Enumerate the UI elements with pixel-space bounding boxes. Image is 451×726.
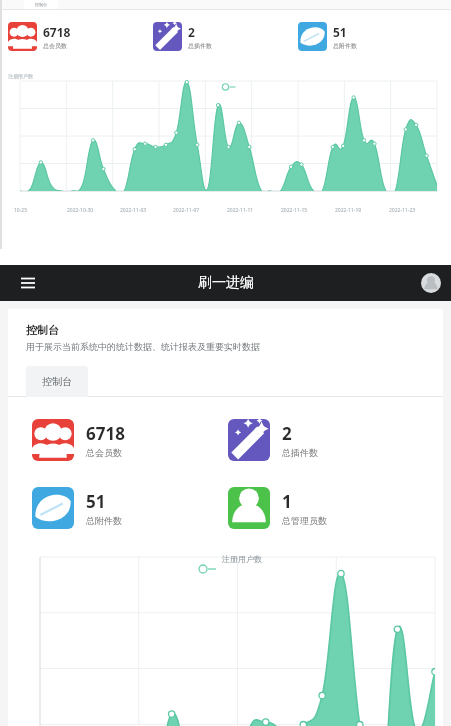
button[interactable]: 总插件数 [153, 22, 298, 51]
staticText: 总会员数 [43, 42, 67, 50]
staticText: 总附件数 [86, 515, 122, 526]
staticText: 6718 [43, 24, 71, 40]
staticText: 控制台 [26, 323, 59, 337]
staticText: 总附件数 [333, 42, 357, 50]
staticText: 2022-11-11 [227, 207, 281, 214]
staticText: 用于展示当前系统中的统计数据、统计报表及重要实时数据 [26, 341, 260, 352]
staticText: 2022-11-03 [120, 207, 173, 214]
staticText: 总插件数 [282, 447, 318, 458]
staticText: 控制台 [42, 375, 72, 388]
staticText: 总会员数 [86, 447, 122, 458]
button[interactable]: 总插件数 [228, 419, 425, 461]
staticText: 2022-11-19 [335, 207, 389, 214]
staticText: 2 [282, 422, 292, 445]
staticText: 注册用户数 [8, 73, 33, 79]
staticText: 2 [188, 24, 195, 40]
other: 总管理员数 [228, 487, 270, 529]
staticText: 刷一进编 [198, 274, 254, 292]
other: 总插件数 [228, 419, 270, 461]
staticText: 2022-11-15 [281, 207, 335, 214]
staticText: 1 [282, 490, 292, 513]
other: 总会员数 [32, 419, 74, 461]
other: 总附件数 [32, 487, 74, 529]
staticText: 51 [333, 24, 347, 40]
button[interactable]: 总附件数 [298, 22, 443, 51]
button[interactable]: 总附件数 [32, 487, 228, 529]
staticText: 2022-11-23 [389, 207, 443, 214]
other: 总会员数 [8, 22, 37, 51]
button[interactable]: 控制台 [24, 0, 58, 9]
staticText: 控制台 [35, 2, 47, 7]
other: 总附件数 [298, 22, 327, 51]
button[interactable]: Account [421, 273, 441, 293]
staticText: 10-25 [14, 207, 67, 214]
staticText: 总插件数 [188, 42, 212, 50]
staticText: 51 [86, 490, 106, 513]
staticText: 注册用户数 [222, 554, 262, 564]
staticText: 6718 [86, 422, 125, 445]
other: 总插件数 [153, 22, 182, 51]
staticText: 2022-11-07 [173, 207, 227, 214]
button[interactable]: 控制台 [26, 366, 88, 397]
staticText: 总管理员数 [282, 515, 327, 526]
button[interactable]: 总会员数 [32, 419, 228, 461]
button[interactable]: 总会员数 [8, 22, 153, 51]
button[interactable]: 总管理员数 [228, 487, 425, 529]
staticText: 2022-10-30 [67, 207, 120, 214]
button[interactable]: Menu [16, 271, 40, 295]
